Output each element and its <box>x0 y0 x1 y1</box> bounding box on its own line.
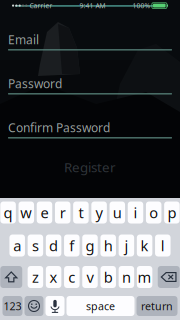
button[interactable]: u <box>109 201 125 223</box>
button[interactable]: s <box>28 234 43 256</box>
staticText: p <box>167 203 176 222</box>
staticText: v <box>86 267 93 287</box>
button[interactable]: f <box>64 234 79 256</box>
button[interactable]: n <box>119 266 134 288</box>
button[interactable]: m <box>137 266 152 288</box>
staticText: j <box>124 236 128 255</box>
button[interactable]: e <box>37 201 52 223</box>
staticText: x <box>50 267 58 287</box>
button[interactable]: b <box>100 266 116 288</box>
button[interactable]: Register <box>8 159 172 175</box>
staticText: w <box>20 203 32 222</box>
staticText: i <box>133 203 137 222</box>
button[interactable]: g <box>82 234 98 256</box>
staticText: d <box>49 236 58 255</box>
staticText: 123 <box>3 299 21 313</box>
staticText: q <box>4 203 13 222</box>
staticText: n <box>122 267 131 287</box>
button[interactable]: y <box>91 201 107 223</box>
button[interactable]: o <box>146 201 161 223</box>
button[interactable]: h <box>100 234 116 256</box>
staticText: k <box>141 236 149 255</box>
button[interactable]: return <box>136 296 177 316</box>
button[interactable]: Dictation <box>45 296 64 316</box>
staticText: space <box>86 299 115 313</box>
staticText: Register <box>64 158 116 176</box>
staticText: a <box>13 236 21 255</box>
staticText: h <box>104 236 113 255</box>
staticText: l <box>161 236 165 255</box>
staticText: g <box>85 236 94 255</box>
staticText: Email <box>8 31 39 47</box>
staticText: Carrier <box>29 1 52 10</box>
button[interactable]: Emoji <box>24 296 43 316</box>
staticText: b <box>104 267 113 287</box>
staticText: 9:41 AM <box>79 1 105 10</box>
button[interactable]: x <box>46 266 61 288</box>
button[interactable]: Delete <box>158 266 180 288</box>
button[interactable]: 123 <box>2 296 22 316</box>
button[interactable]: a <box>9 234 25 256</box>
staticText: return <box>141 299 173 313</box>
staticText: e <box>40 203 48 222</box>
button[interactable]: w <box>18 201 34 223</box>
staticText: s <box>32 236 39 255</box>
staticText: 100% <box>132 1 150 10</box>
staticText: z <box>32 267 39 287</box>
button[interactable]: r <box>55 201 70 223</box>
staticText: o <box>149 203 158 222</box>
button[interactable]: v <box>82 266 98 288</box>
button[interactable]: k <box>137 234 152 256</box>
button[interactable]: q <box>0 201 16 223</box>
button[interactable]: space <box>66 296 134 316</box>
staticText: u <box>113 203 122 222</box>
staticText: y <box>96 203 103 222</box>
button[interactable]: p <box>164 201 180 223</box>
button[interactable]: t <box>73 201 89 223</box>
staticText: m <box>138 267 152 287</box>
button[interactable]: c <box>64 266 79 288</box>
staticText: f <box>69 236 74 255</box>
button[interactable]: j <box>119 234 134 256</box>
staticText: Password <box>8 75 62 91</box>
button[interactable]: z <box>28 266 43 288</box>
button[interactable]: d <box>46 234 61 256</box>
button[interactable]: i <box>128 201 143 223</box>
staticText: Confirm Password <box>8 119 110 135</box>
button[interactable]: l <box>155 234 171 256</box>
button[interactable]: Shift <box>0 266 22 288</box>
staticText: c <box>68 267 75 287</box>
staticText: r <box>60 203 66 222</box>
staticText: t <box>78 203 83 222</box>
